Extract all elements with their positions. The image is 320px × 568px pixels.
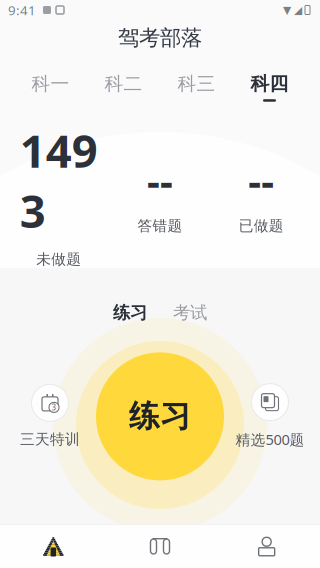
button[interactable]: Home xyxy=(0,525,107,568)
staticText: 考试 xyxy=(173,302,207,323)
staticText: 科二 xyxy=(104,72,142,95)
button[interactable]: 练习 xyxy=(96,352,224,480)
button[interactable]: 科二 xyxy=(87,70,160,104)
button[interactable]: 考试 xyxy=(169,299,211,326)
staticText: 1493 xyxy=(20,120,98,240)
staticText: 驾考部落 xyxy=(118,25,202,51)
button[interactable]: 精选500题 xyxy=(234,384,306,449)
button[interactable]: 科一 xyxy=(14,70,87,104)
button[interactable]: 3 xyxy=(14,384,86,448)
staticText: 已做题 xyxy=(239,217,284,235)
staticText: ◢ xyxy=(294,4,302,16)
button[interactable]: 科三 xyxy=(160,70,233,104)
staticText: 三天特训 xyxy=(20,430,80,448)
staticText: 科四 xyxy=(250,72,288,95)
staticText: 练习 xyxy=(129,398,191,435)
staticText: 答错题 xyxy=(137,217,182,235)
staticText: ▼ xyxy=(283,4,291,16)
staticText: 3 xyxy=(51,402,56,413)
button[interactable]: 练习 xyxy=(109,299,151,326)
staticText: 科三 xyxy=(177,72,215,95)
staticText: 精选500题 xyxy=(235,430,304,449)
button[interactable]: Profile xyxy=(213,525,320,568)
staticText: 未做题 xyxy=(36,250,81,268)
staticText: -- xyxy=(147,154,173,207)
staticText: 9:41 xyxy=(8,1,36,19)
button[interactable]: 科四 xyxy=(233,70,306,104)
staticText: 科一 xyxy=(31,72,69,95)
button[interactable]: Audio xyxy=(107,525,213,568)
staticText: 练习 xyxy=(113,302,147,323)
staticText: -- xyxy=(248,154,274,207)
